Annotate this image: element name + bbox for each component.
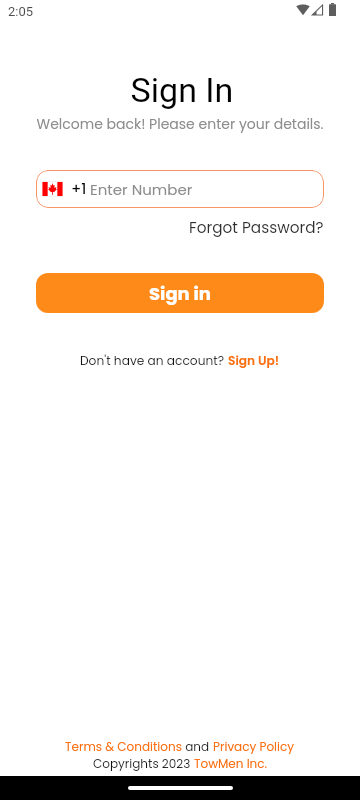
button[interactable]: +1 — [36, 170, 324, 208]
staticText: Sign in — [149, 281, 211, 306]
staticText: 2:05 — [8, 4, 34, 19]
staticText: Sign In — [2, 70, 360, 110]
staticText: +1 — [71, 179, 87, 199]
staticText: Welcome back! Please enter your details. — [0, 114, 360, 134]
button[interactable]: Forgot Password? — [189, 217, 360, 238]
staticText: and — [182, 738, 213, 755]
staticText: Copyrights 2023 — [93, 755, 194, 772]
button[interactable]: Privacy Policy — [213, 738, 295, 755]
button[interactable]: Sign in — [36, 273, 324, 313]
staticText: TowMen Inc. — [194, 755, 268, 772]
staticText: Sign Up! — [228, 352, 280, 369]
staticText: Enter Number — [90, 179, 193, 200]
button[interactable]: Don't have an account? — [80, 352, 280, 369]
button[interactable]: Terms & Conditions — [65, 738, 182, 755]
staticText: Don't have an account? — [80, 352, 228, 369]
